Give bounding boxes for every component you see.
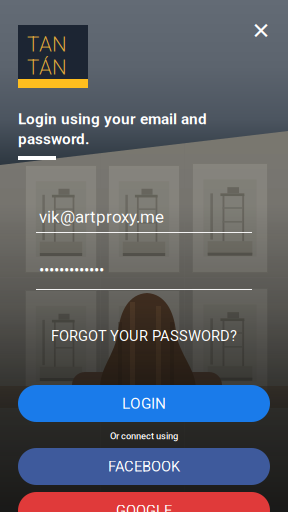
staticText: TÁN [27,55,67,80]
staticText: password. [18,130,89,148]
staticText: FORGOT YOUR PASSWORD? [51,327,237,345]
staticText: Login using your email and [18,110,207,128]
button[interactable]: LOGIN [18,385,270,422]
staticText: GOOGLE [116,502,172,512]
staticText: ✕ [251,18,270,44]
button[interactable]: FACEBOOK [18,448,270,485]
staticText: TAN [27,32,67,57]
button[interactable]: FORGOT YOUR PASSWORD? [34,325,254,347]
button[interactable]: Close [242,12,280,50]
staticText: ••••••••••••• [39,261,104,279]
staticText: LOGIN [122,394,166,412]
staticText: Or connect using [110,430,178,441]
staticText: FACEBOOK [108,458,180,475]
button[interactable]: GOOGLE [18,492,270,512]
staticText: vik@artproxy.me [39,207,164,227]
